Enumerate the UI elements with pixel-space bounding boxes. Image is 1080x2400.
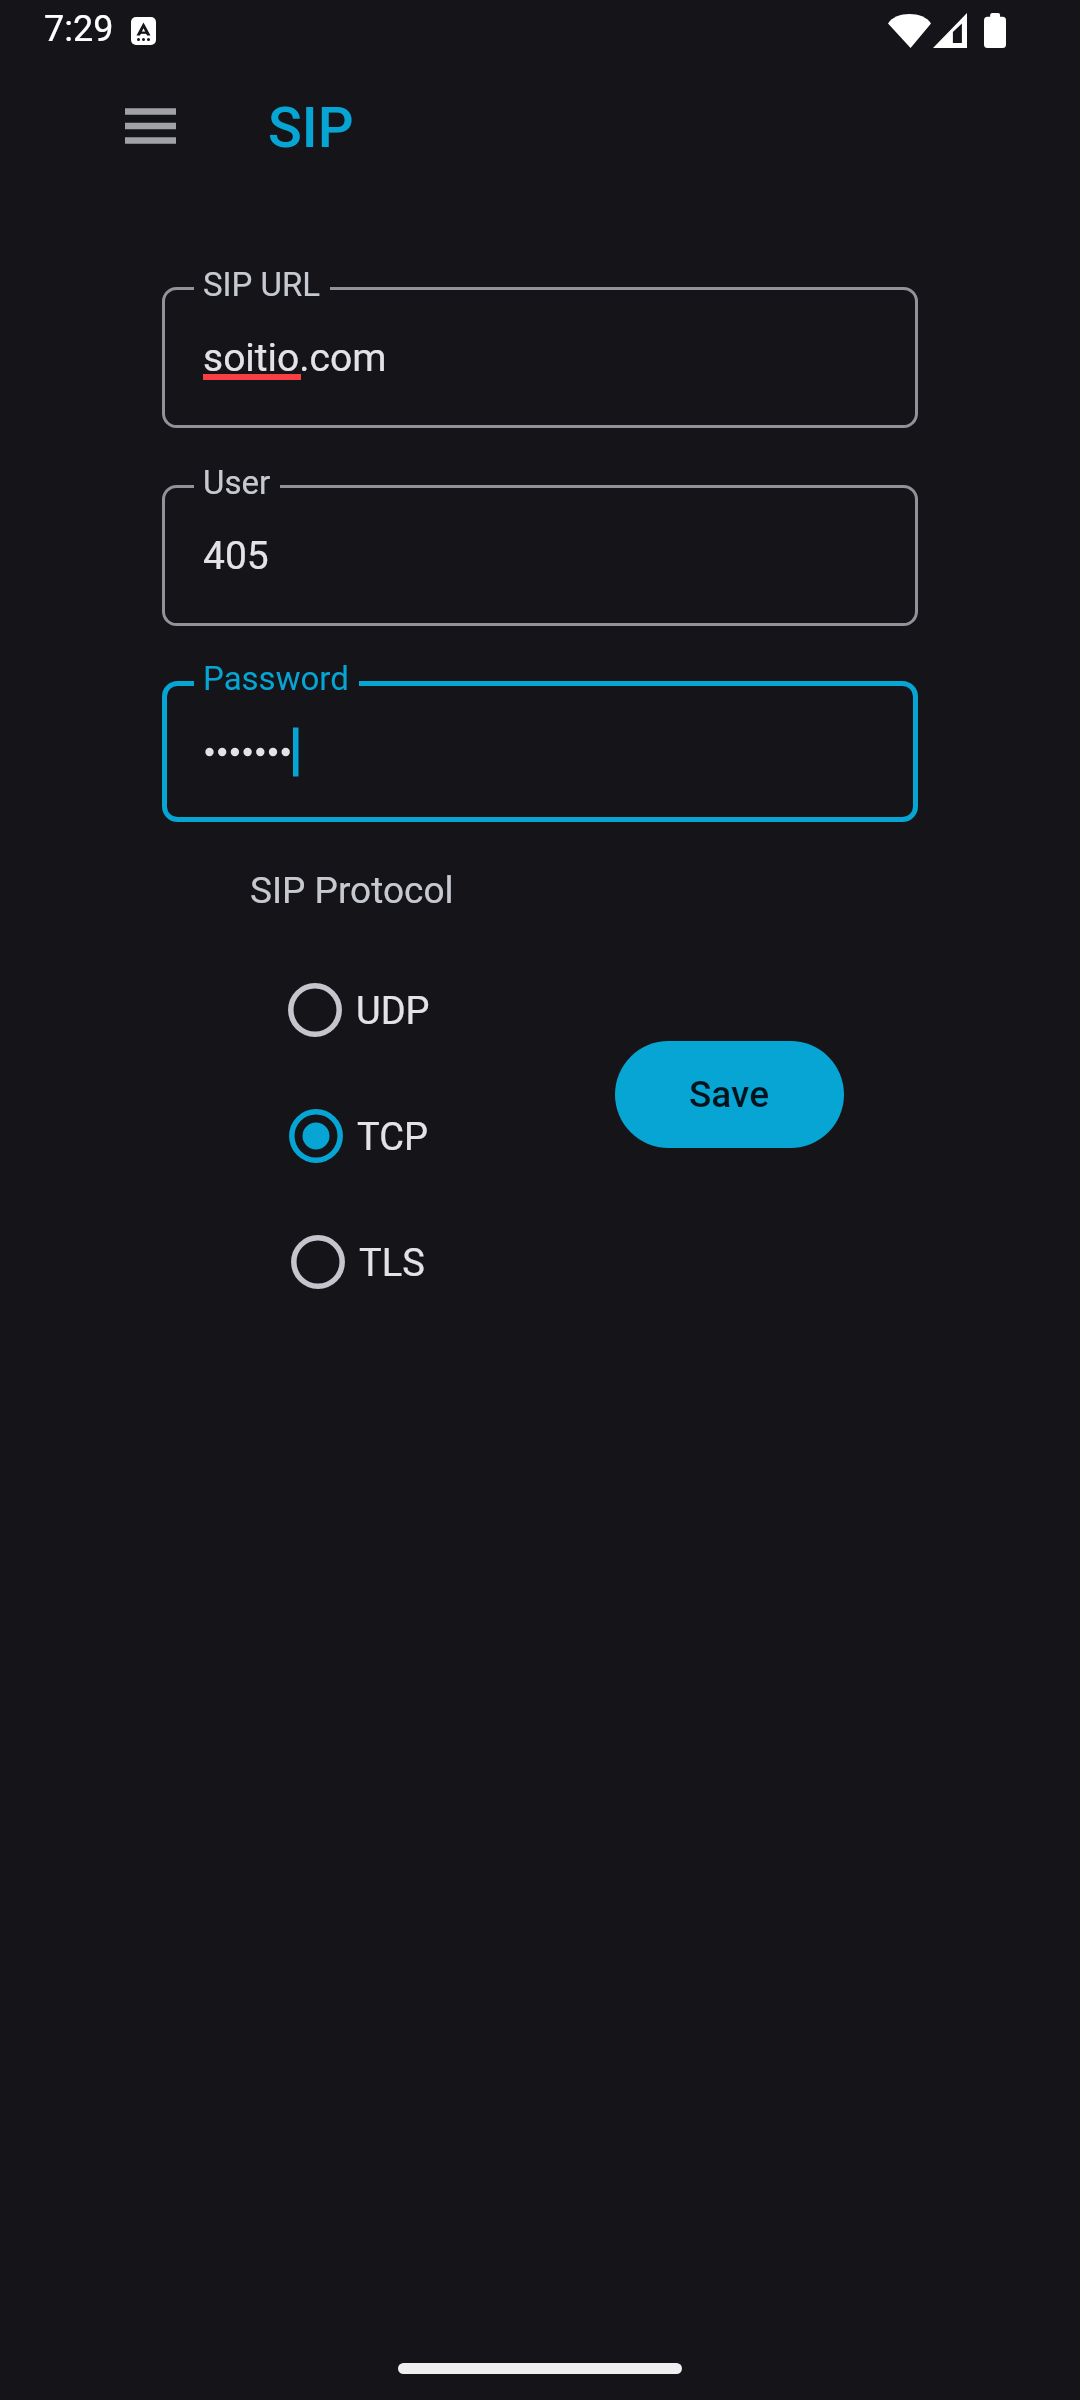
staticText: 405 [203,533,269,579]
staticText: 7:29 [44,8,114,50]
button[interactable]: User [162,485,918,626]
staticText: SIP URL [203,265,321,304]
staticText: Save [689,1073,770,1116]
button[interactable]: SIP URL [162,287,918,428]
staticText: soitio.com [203,335,387,381]
button[interactable]: Open navigation menu [110,85,192,167]
button[interactable]: TLS [280,1224,510,1300]
button[interactable]: UDP [277,972,507,1048]
staticText: Password [203,659,349,698]
staticText: SIP Protocol [250,869,454,912]
staticText: SIP [268,95,354,161]
staticText: TLS [359,1241,425,1286]
button[interactable]: Password [162,681,918,822]
staticText: TCP [357,1115,428,1160]
button[interactable]: TCP [278,1098,508,1174]
staticText: UDP [356,989,430,1034]
staticText: User [203,463,271,502]
button[interactable]: Save [615,1041,844,1148]
